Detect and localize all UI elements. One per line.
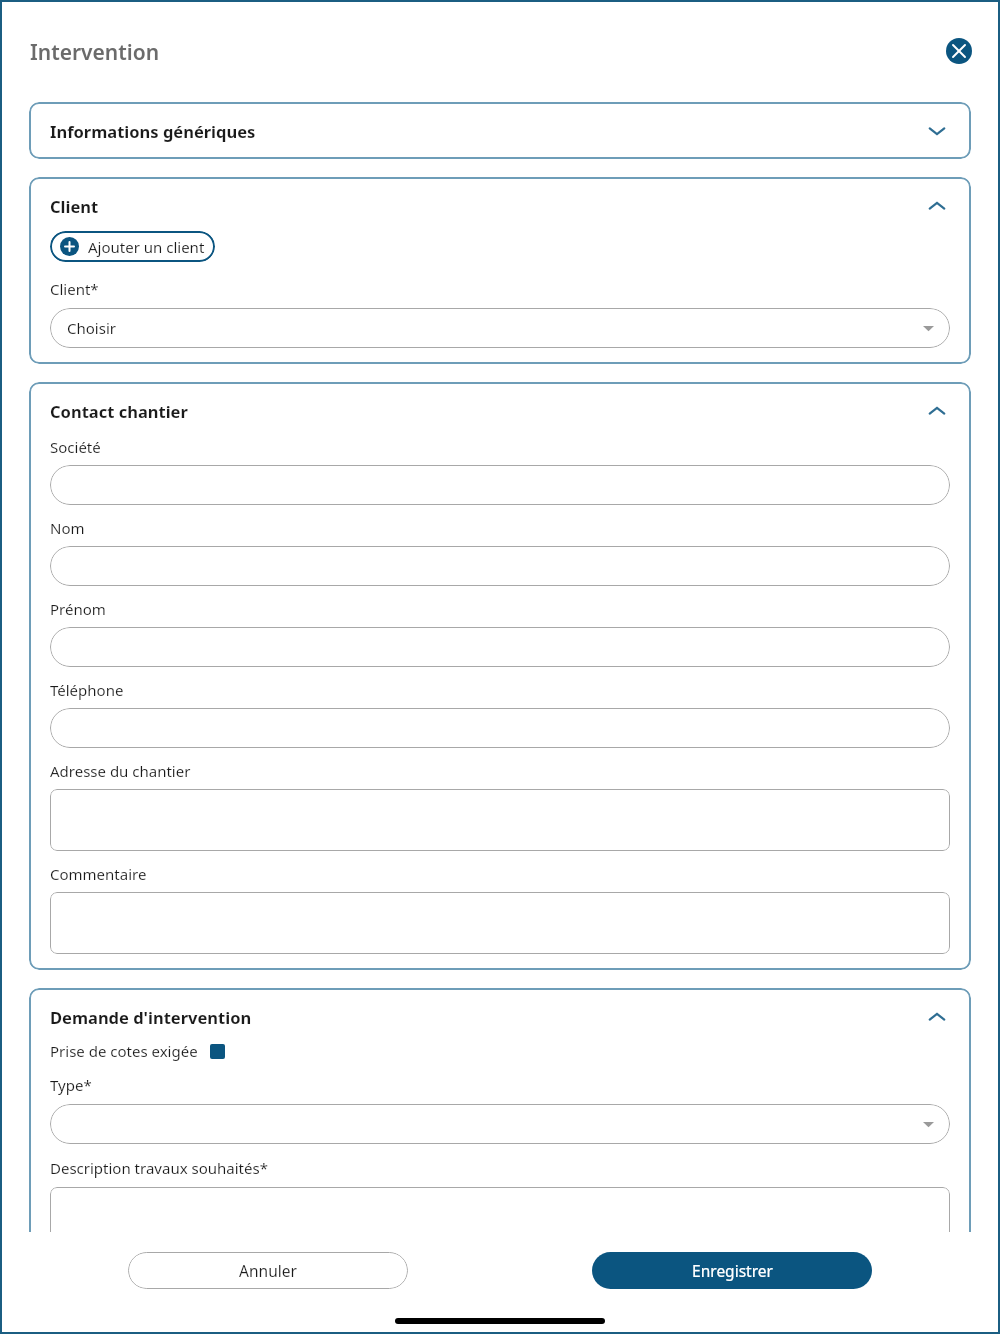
- button[interactable]: [50, 892, 950, 954]
- button[interactable]: Informations génériques: [29, 102, 971, 159]
- staticText: Type*: [50, 1075, 92, 1095]
- staticText: Client*: [50, 279, 99, 299]
- staticText: Enregistrer: [692, 1260, 773, 1281]
- staticText: Téléphone: [50, 680, 124, 700]
- button[interactable]: Prise de cotes exigée: [50, 1041, 225, 1061]
- staticText: Choisir: [67, 318, 116, 338]
- button[interactable]: [50, 465, 950, 505]
- staticText: Client: [50, 195, 924, 217]
- button[interactable]: Demande d'intervention: [50, 1004, 950, 1030]
- staticText: Adresse du chantier: [50, 761, 191, 781]
- staticText: Intervention: [30, 38, 160, 67]
- button[interactable]: [50, 1187, 950, 1232]
- button[interactable]: Annuler: [128, 1252, 408, 1289]
- staticText: Société: [50, 437, 101, 457]
- staticText: Description travaux souhaités*: [50, 1158, 268, 1178]
- button[interactable]: Fermer: [946, 38, 972, 64]
- staticText: Ajouter un client: [88, 237, 205, 257]
- button[interactable]: Client: [50, 193, 950, 219]
- staticText: Contact chantier: [50, 400, 924, 422]
- button[interactable]: Choisir: [50, 308, 950, 348]
- staticText: Prise de cotes exigée: [50, 1041, 198, 1061]
- staticText: Annuler: [239, 1260, 297, 1281]
- button[interactable]: [50, 627, 950, 667]
- staticText: Demande d'intervention: [50, 1006, 924, 1028]
- button[interactable]: Enregistrer: [592, 1252, 872, 1289]
- button[interactable]: [50, 1104, 950, 1144]
- button[interactable]: Ajouter un client: [50, 231, 215, 262]
- staticText: Informations génériques: [50, 120, 924, 142]
- button[interactable]: [50, 789, 950, 851]
- staticText: Prénom: [50, 599, 106, 619]
- button[interactable]: [50, 546, 950, 586]
- button[interactable]: Contact chantier: [50, 398, 950, 424]
- button[interactable]: [50, 708, 950, 748]
- staticText: Nom: [50, 518, 85, 538]
- staticText: Commentaire: [50, 864, 147, 884]
